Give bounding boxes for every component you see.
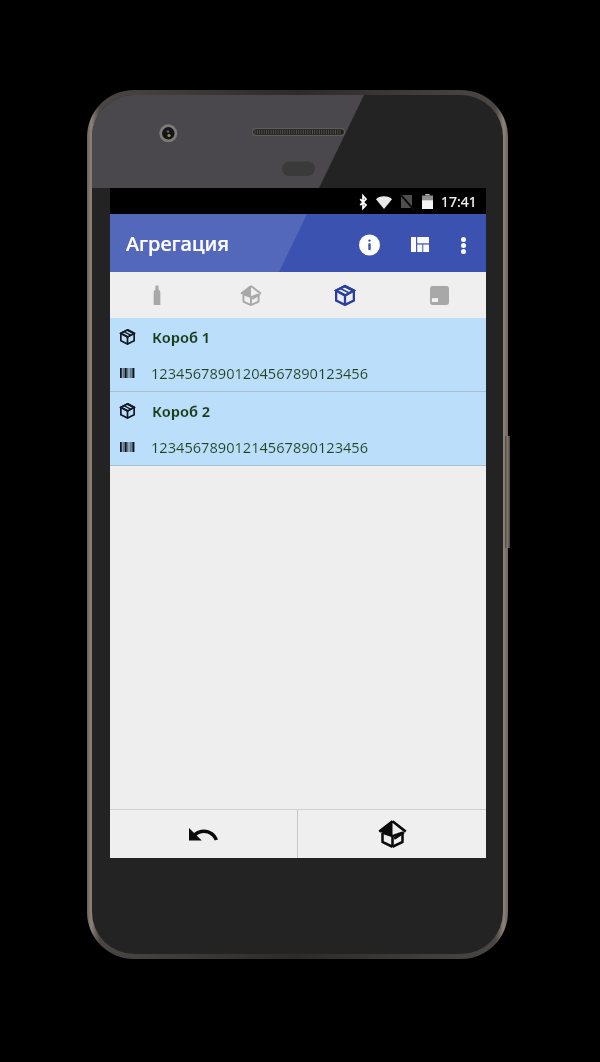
button[interactable]: Sealed box	[298, 272, 392, 313]
button[interactable]: Switch view	[398, 214, 442, 272]
button[interactable]: More options	[443, 214, 483, 272]
button[interactable]: Info	[347, 214, 391, 272]
staticText: Агрегация	[126, 230, 229, 257]
button[interactable]: Pallet	[392, 272, 486, 313]
staticText: Короб 1	[152, 327, 211, 347]
button[interactable]: Close box	[298, 810, 486, 858]
button[interactable]: Короб 2	[110, 392, 486, 466]
staticText: 12345678901214567890123456	[151, 437, 369, 457]
staticText: Короб 2	[152, 401, 211, 421]
button[interactable]: Короб 1	[110, 318, 486, 392]
staticText: 17:41	[441, 192, 477, 211]
button[interactable]: Open box	[204, 272, 298, 313]
staticText: 12345678901204567890123456	[151, 363, 369, 383]
button[interactable]: Undo	[110, 810, 297, 858]
button[interactable]: Bottles	[110, 272, 204, 313]
